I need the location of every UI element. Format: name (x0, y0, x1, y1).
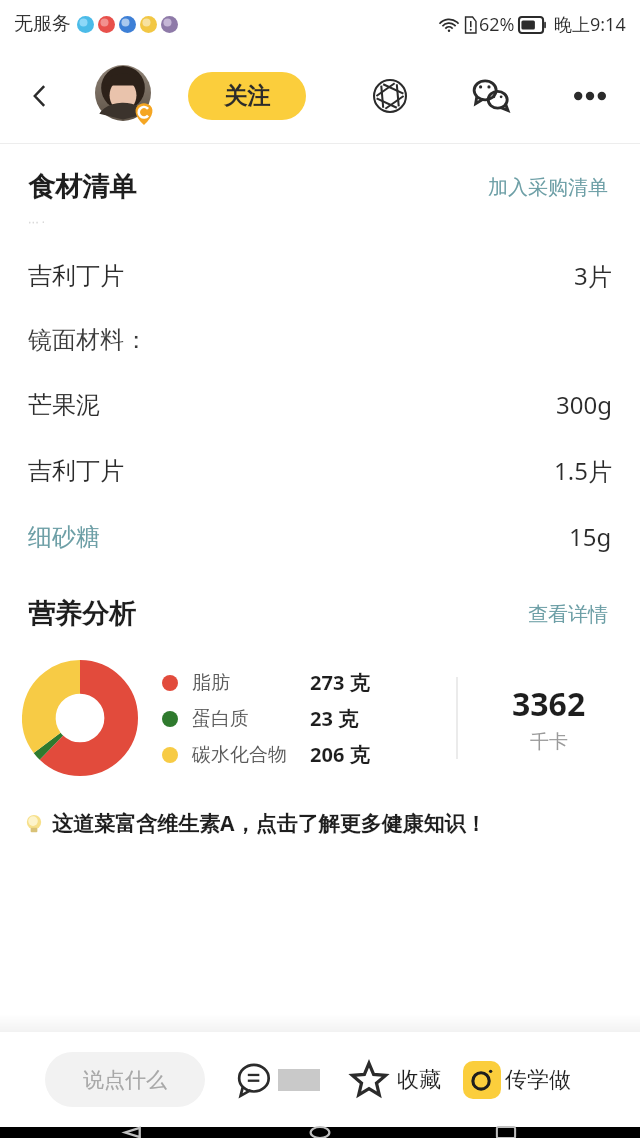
staticText: 蛋白质 (192, 707, 249, 731)
staticText: 加入采购清单 (488, 175, 608, 200)
button[interactable]: Comments (237, 1062, 320, 1098)
staticText: 食材清单 (28, 170, 136, 204)
staticText: 1.5片 (554, 454, 612, 487)
staticText: 23 克 (310, 705, 359, 732)
button[interactable]: 镜面材料： (28, 325, 612, 355)
staticText: 脂肪 (192, 671, 230, 695)
staticText: 3片 (574, 259, 612, 292)
staticText: 62% (479, 12, 515, 37)
staticText: 镜面材料： (28, 325, 148, 355)
staticText: 查看详情 (528, 602, 608, 627)
button[interactable]: Back (110, 1127, 158, 1138)
staticText: 300g (556, 388, 612, 421)
staticText: 说点什么 (83, 1067, 167, 1093)
staticText: 吉利丁片 (28, 456, 124, 486)
button[interactable]: Camera (366, 72, 414, 120)
staticText: 无服务 (14, 12, 71, 36)
button[interactable]: Recent apps (482, 1127, 530, 1138)
button[interactable]: 关注 (188, 72, 306, 120)
staticText: 芒果泥 (28, 390, 100, 420)
staticText: 206 克 (310, 741, 370, 768)
button[interactable]: 吉利丁片 (28, 259, 612, 292)
button[interactable]: 加入采购清单 (484, 171, 612, 204)
staticText: 细砂糖 (28, 522, 100, 552)
button[interactable]: 说点什么 (45, 1052, 205, 1107)
staticText: 吉利丁片 (28, 261, 124, 291)
staticText: 碳水化合物 (192, 743, 287, 767)
staticText: 千卡 (530, 730, 568, 754)
staticText: 传学做 (505, 1066, 571, 1094)
staticText: 营养分析 (28, 597, 136, 631)
button[interactable]: More options (566, 72, 614, 120)
staticText: 273 克 (310, 669, 370, 696)
staticText: 这道菜富含维生素A，点击了解更多健康知识！ (52, 809, 487, 838)
staticText: 15g (569, 520, 612, 553)
button[interactable]: Share to WeChat (468, 72, 516, 120)
staticText: 收藏 (397, 1066, 441, 1094)
button[interactable]: 查看详情 (524, 598, 612, 631)
staticText: 晚上9:14 (554, 12, 626, 37)
button[interactable]: User profile (95, 65, 157, 127)
staticText: ⋯ ⋅ (28, 214, 46, 229)
button[interactable]: Home (296, 1127, 344, 1138)
button[interactable]: 收藏 (350, 1061, 441, 1099)
button[interactable]: 吉利丁片 (28, 454, 612, 487)
staticText: 关注 (224, 82, 270, 111)
button[interactable]: 传学做 (463, 1061, 571, 1099)
button[interactable]: Back (18, 74, 62, 118)
button[interactable]: 细砂糖 (28, 520, 612, 553)
button[interactable]: 芒果泥 (28, 388, 612, 421)
staticText: 3362 (512, 682, 586, 726)
button[interactable]: 这道菜富含维生素A，点击了解更多健康知识！ (22, 809, 640, 838)
